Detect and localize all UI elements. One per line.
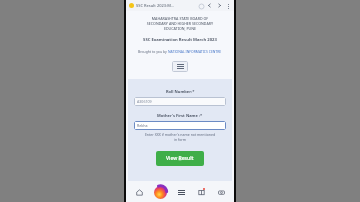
staticText: Brought to you by <box>138 49 168 54</box>
staticText: MAHARASHTRA STATE BOARD OF SECONDARY AND… <box>132 16 228 31</box>
button[interactable]: Site info <box>129 3 134 8</box>
staticText: SSC Examination Result March 2023 <box>132 37 228 43</box>
button[interactable]: NATIONAL INFORMATICS CENTRE <box>168 49 222 54</box>
button[interactable]: Rekha <box>134 121 226 130</box>
button[interactable]: A306109 <box>134 97 226 106</box>
button[interactable]: More options <box>226 2 231 10</box>
button[interactable]: Firefox <box>152 184 168 200</box>
button[interactable]: Back <box>206 2 213 9</box>
staticText: Roll Number:* <box>166 89 195 94</box>
button[interactable]: Reload <box>198 3 204 9</box>
button[interactable]: Bookmarks <box>194 185 208 199</box>
staticText: Enter XXX if mother's name not mentioned… <box>134 132 226 142</box>
staticText: View Result <box>166 155 194 162</box>
staticText: SSC Result 2023:M... <box>136 3 198 8</box>
button[interactable]: Menu <box>172 61 188 72</box>
button[interactable]: Forward <box>216 2 223 9</box>
staticText: A306109 <box>137 99 152 104</box>
button[interactable]: Tabs <box>174 185 188 199</box>
button[interactable]: Camera <box>214 185 228 199</box>
button[interactable]: View Result <box>156 151 204 166</box>
staticText: Rekha <box>137 123 148 128</box>
button[interactable]: Home <box>132 185 146 199</box>
staticText: Mother's First Name :* <box>157 113 203 118</box>
